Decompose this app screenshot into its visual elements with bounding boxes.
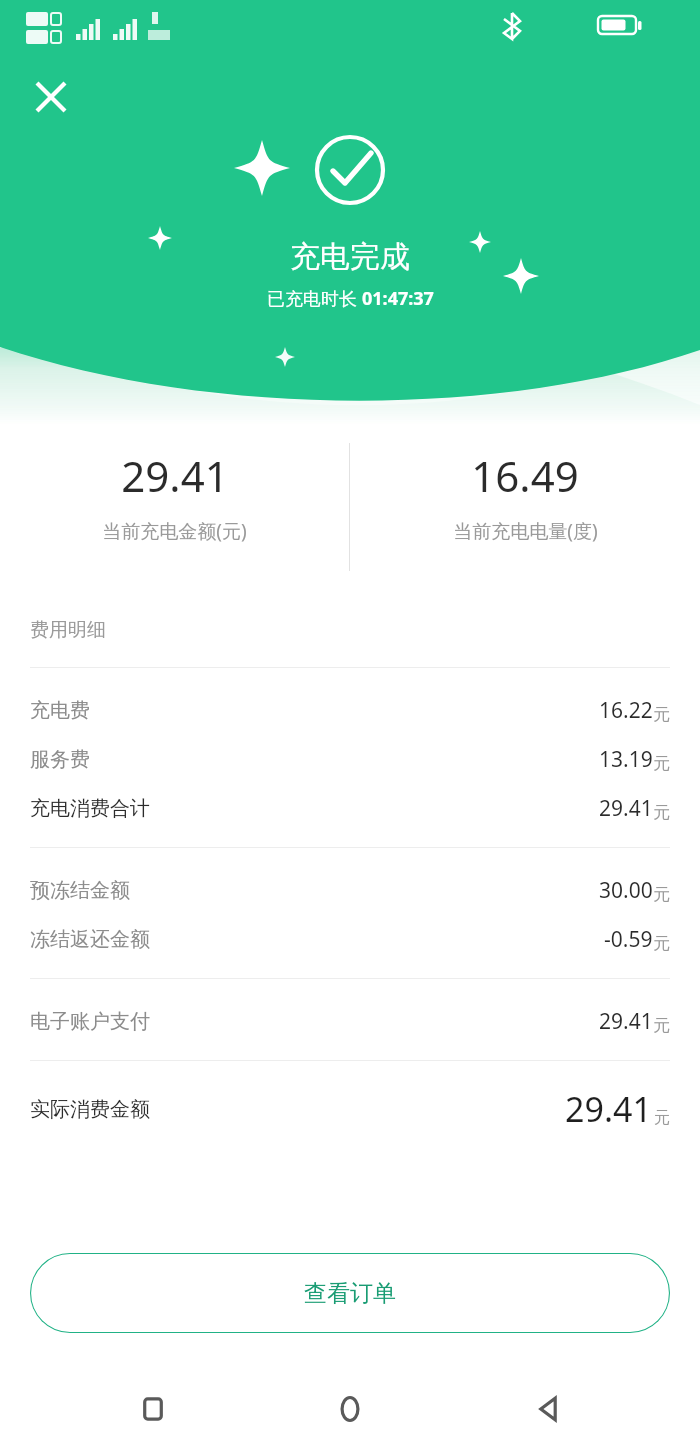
staticText: 元	[653, 1015, 670, 1036]
button[interactable]: 充电消费合计	[30, 784, 670, 833]
staticText: 29.41	[599, 1007, 653, 1036]
staticText: 冻结返还金额	[30, 927, 150, 952]
staticText: 当前充电金额(元)	[102, 518, 247, 544]
staticText: 元	[654, 1108, 670, 1128]
staticText: 元	[653, 704, 670, 725]
staticText: 充电费	[30, 698, 90, 723]
button[interactable]: 冻结返还金额	[30, 915, 670, 964]
staticText: 电子账户支付	[30, 1009, 150, 1034]
staticText: 元	[653, 802, 670, 823]
staticText: 16.22	[599, 696, 653, 725]
button[interactable]: 服务费	[30, 735, 670, 784]
staticText: 已充电时长	[267, 286, 362, 311]
button[interactable]: 充电费	[30, 686, 670, 735]
button[interactable]: 预冻结金额	[30, 866, 670, 915]
staticText: 元	[653, 753, 670, 774]
button[interactable]: 电子账户支付	[30, 997, 670, 1046]
staticText: 29.41	[599, 794, 653, 823]
button[interactable]: 查看订单	[30, 1253, 670, 1333]
staticText: 充电完成	[290, 238, 410, 276]
staticText: 充电消费合计	[30, 796, 150, 821]
staticText: 费用明细	[30, 618, 106, 642]
staticText: 元	[653, 884, 670, 905]
button[interactable]: 实际消费金额	[30, 1071, 670, 1147]
button[interactable]: Home	[305, 1364, 395, 1454]
staticText: 预冻结金额	[30, 878, 130, 903]
staticText: 16.49	[471, 447, 579, 504]
staticText: 查看订单	[304, 1279, 396, 1308]
button[interactable]: Recents	[108, 1364, 198, 1454]
staticText: 服务费	[30, 747, 90, 772]
staticText: -0.59	[604, 925, 653, 954]
staticText: 元	[653, 933, 670, 954]
staticText: 13.19	[599, 745, 653, 774]
staticText: 01:47:37	[362, 286, 434, 311]
staticText: 30.00	[599, 876, 653, 905]
staticText: 当前充电电量(度)	[453, 518, 598, 544]
button[interactable]: Close	[24, 70, 80, 126]
staticText: 29.41	[121, 447, 229, 504]
staticText: 实际消费金额	[30, 1097, 150, 1122]
button[interactable]: Back	[503, 1364, 593, 1454]
staticText: 29.41	[565, 1086, 652, 1132]
